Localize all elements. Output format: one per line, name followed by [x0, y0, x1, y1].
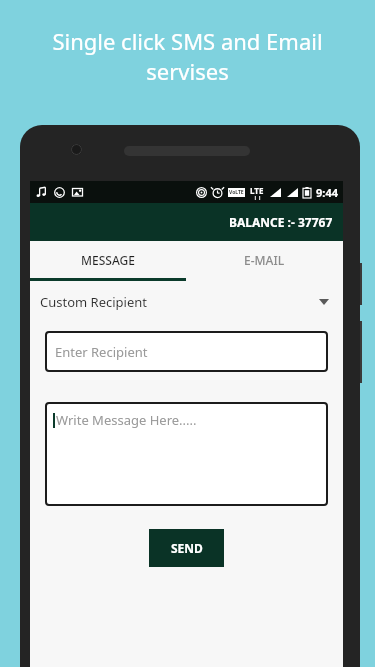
button[interactable]: Custom Recipient [30, 281, 343, 323]
button[interactable]: Write Message Here..... [45, 402, 328, 506]
staticText: SEND [171, 540, 203, 556]
button[interactable]: Enter Recipient [45, 331, 328, 372]
staticText: BALANCE :- 37767 [229, 214, 333, 230]
button[interactable]: MESSAGE [30, 241, 186, 278]
button[interactable]: E-MAIL [186, 241, 343, 278]
staticText: 9:44 [316, 185, 338, 200]
button[interactable]: SEND [149, 529, 224, 567]
staticText: VoLTE [229, 189, 244, 196]
staticText: E-MAIL [244, 252, 285, 268]
staticText: Custom Recipient [40, 293, 147, 311]
staticText: Single click SMS and Email servises [24, 26, 351, 86]
staticText: Enter Recipient [55, 343, 148, 361]
staticText: MESSAGE [81, 252, 135, 268]
staticText: Write Message Here..... [56, 411, 197, 429]
staticText: LTE [250, 185, 264, 196]
